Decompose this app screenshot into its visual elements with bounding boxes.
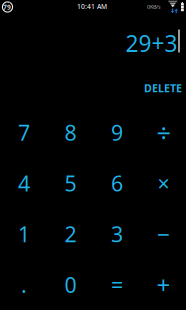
staticText: 5 [64, 169, 76, 197]
button[interactable]: 0 [47, 259, 94, 310]
staticText: − [157, 219, 170, 249]
staticText: = [111, 270, 123, 299]
staticText: × [158, 169, 170, 197]
staticText: 8 [64, 118, 76, 146]
button[interactable]: + [140, 259, 186, 310]
staticText: 79 [3, 3, 11, 12]
staticText: . [21, 270, 27, 299]
button[interactable]: − [140, 208, 186, 259]
staticText: 2 [64, 220, 76, 248]
staticText: DELETE [144, 81, 182, 95]
staticText: 3 [111, 220, 123, 248]
staticText: ÷ [157, 116, 171, 149]
staticText: 7 [18, 118, 30, 146]
button[interactable]: = [94, 259, 140, 310]
button[interactable]: 2 [47, 208, 94, 259]
button[interactable]: 4 [1, 158, 47, 209]
button[interactable]: ÷ [140, 107, 186, 158]
staticText: 0 [64, 270, 76, 299]
staticText: + [157, 269, 171, 301]
staticText: 6 [111, 169, 123, 197]
button[interactable]: 7 [1, 107, 47, 158]
staticText: 4 [18, 169, 30, 197]
staticText: 0KB/s [147, 3, 161, 10]
button[interactable]: 3 [94, 208, 140, 259]
staticText: 1 [18, 220, 30, 248]
button[interactable]: 8 [47, 107, 94, 158]
button[interactable]: 1 [1, 208, 47, 259]
button[interactable]: 6 [94, 158, 140, 209]
button[interactable]: 9 [94, 107, 140, 158]
button[interactable]: 5 [47, 158, 94, 209]
button[interactable]: . [1, 259, 47, 310]
staticText: 29+3 [125, 28, 177, 58]
staticText: 9 [111, 118, 123, 146]
button[interactable]: × [140, 158, 186, 209]
staticText: 10:41 AM [77, 2, 107, 11]
button[interactable]: Delete [139, 77, 186, 99]
